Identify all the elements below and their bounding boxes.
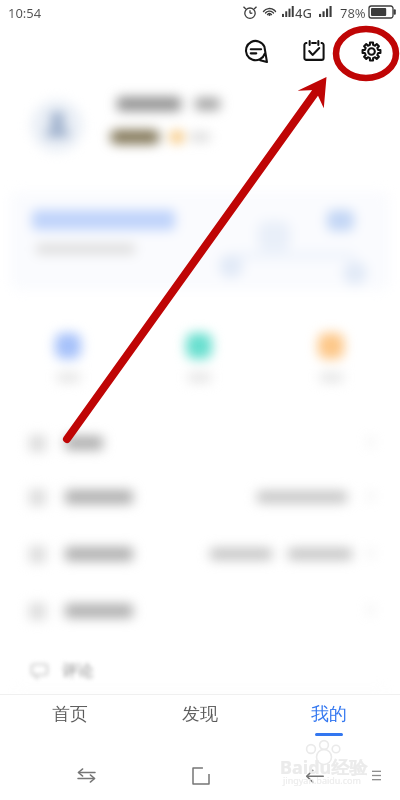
staticText: 10:54 xyxy=(8,4,42,22)
button[interactable]: Back xyxy=(295,756,334,795)
staticText: 发现 xyxy=(182,703,218,726)
button[interactable] xyxy=(186,333,212,359)
button[interactable]: Tasks xyxy=(296,33,332,69)
button[interactable]: Settings xyxy=(353,33,389,69)
staticText: jingyan.baidu.com xyxy=(283,774,361,786)
staticText: 评论 xyxy=(62,661,94,681)
button[interactable] xyxy=(0,528,400,580)
staticText: 78% xyxy=(340,4,366,22)
button[interactable]: Home xyxy=(181,756,220,795)
button[interactable] xyxy=(55,333,81,359)
button[interactable]: Menu xyxy=(366,757,386,793)
button[interactable]: 发现 xyxy=(155,695,245,745)
staticText: Baidu经验 xyxy=(280,755,368,780)
button[interactable]: 我的 xyxy=(284,695,374,745)
staticText: 4G xyxy=(295,4,312,22)
button[interactable] xyxy=(0,417,400,469)
staticText: 首页 xyxy=(52,703,88,726)
button[interactable]: Switch apps xyxy=(67,756,106,795)
button[interactable]: Messages xyxy=(238,33,274,69)
button[interactable] xyxy=(10,192,390,290)
button[interactable] xyxy=(0,471,400,523)
button[interactable] xyxy=(318,333,344,359)
button[interactable]: 评论 xyxy=(20,653,140,689)
button[interactable]: 首页 xyxy=(25,695,115,745)
staticText: 我的 xyxy=(311,703,347,726)
button[interactable] xyxy=(0,585,400,637)
